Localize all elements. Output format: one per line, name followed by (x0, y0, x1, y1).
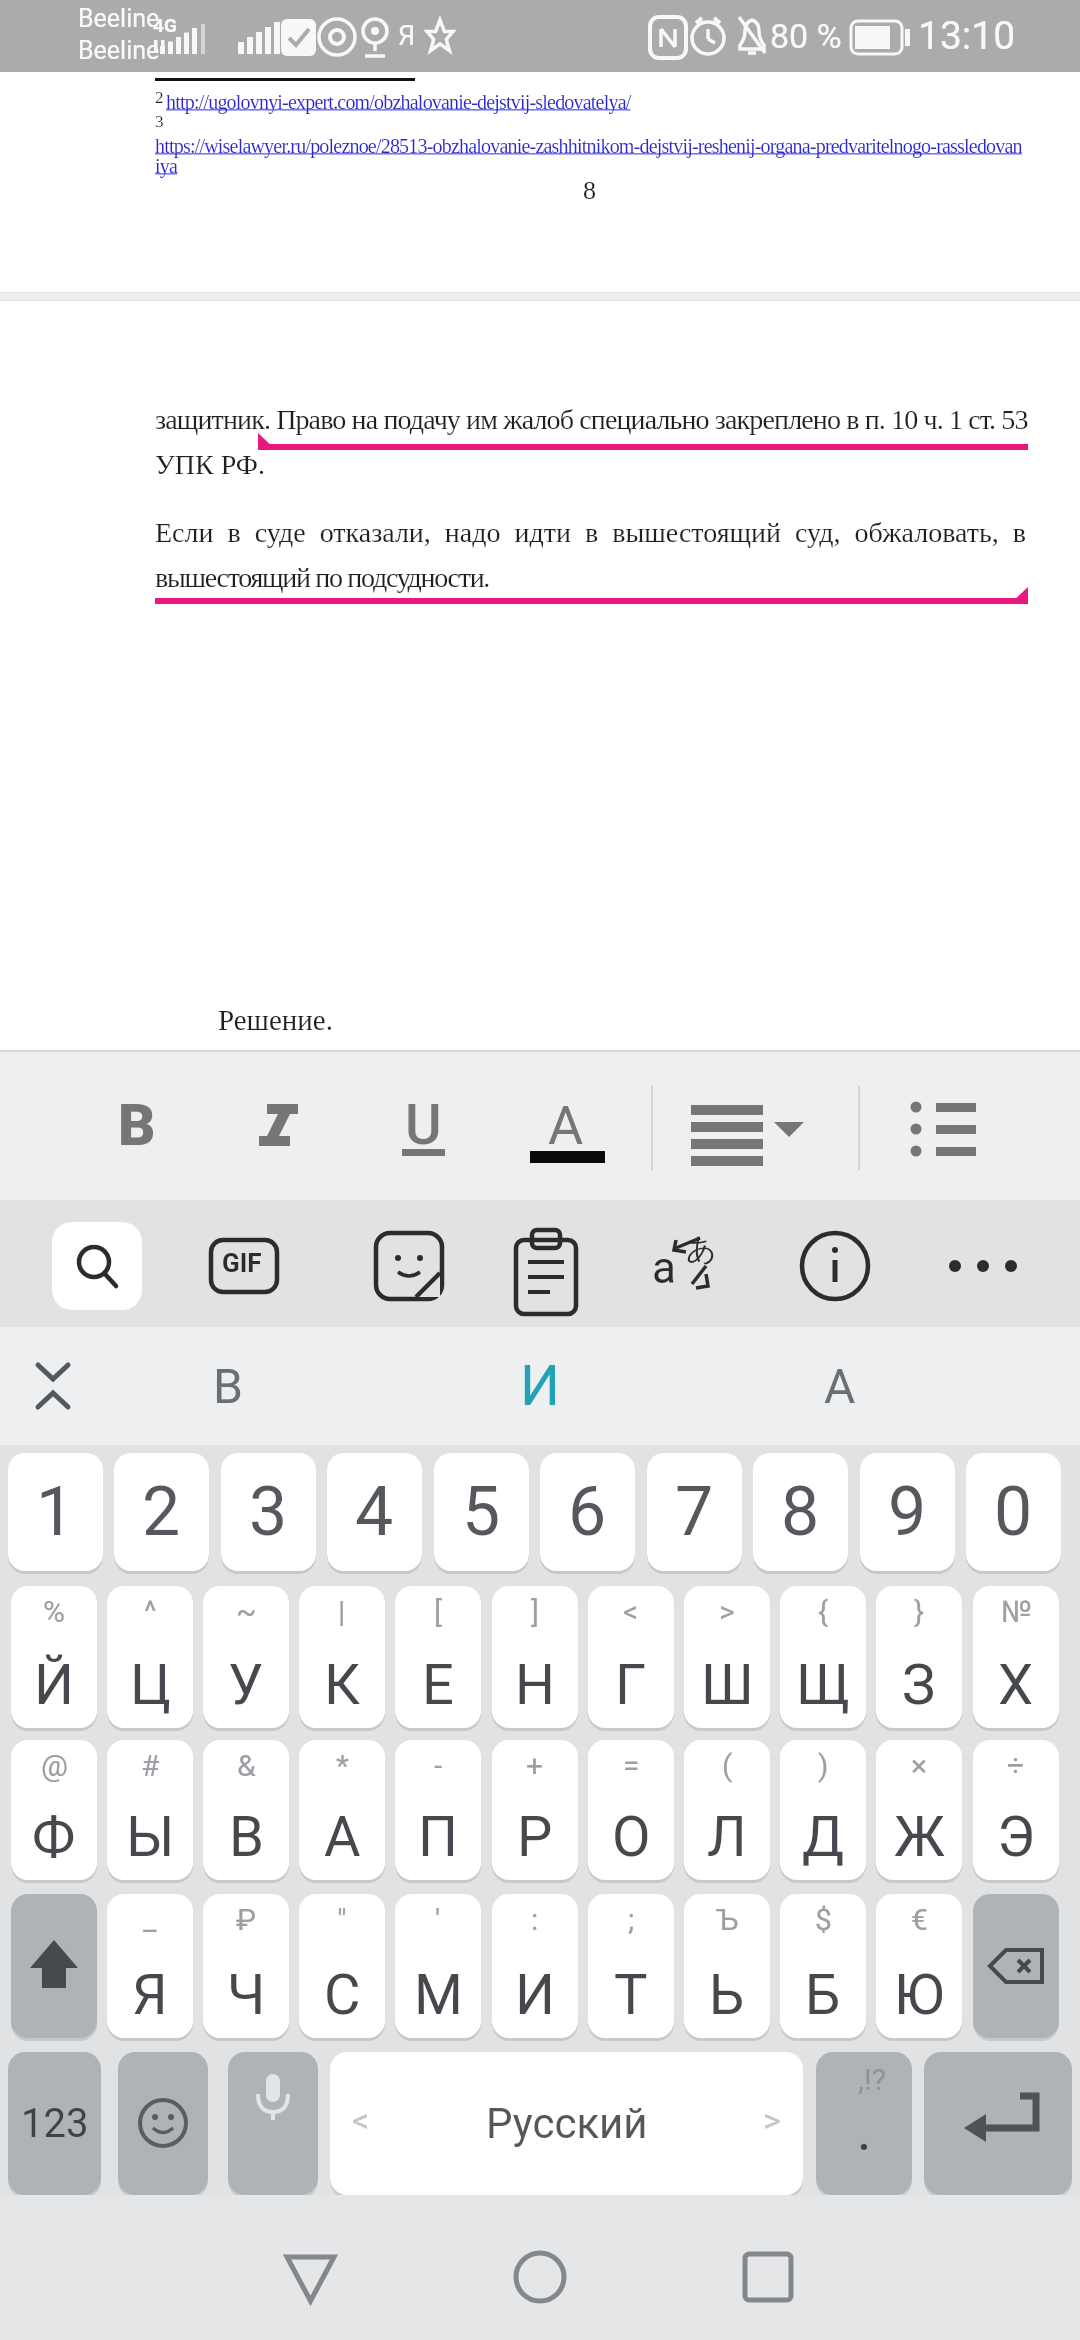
staticText: Ж (894, 1804, 945, 1870)
staticText: 0 (994, 1472, 1033, 1552)
button[interactable]: Ъ (684, 1894, 770, 2038)
staticText: € (911, 1902, 928, 1937)
button[interactable]: U (383, 1072, 463, 1178)
button[interactable]: 4 (327, 1453, 422, 1571)
button[interactable]: № (973, 1586, 1059, 1728)
button[interactable]: ' (395, 1894, 481, 2038)
staticText: УПК РФ. (155, 449, 265, 480)
button[interactable]: € (876, 1894, 962, 2038)
button[interactable] (118, 2052, 208, 2195)
button[interactable]: ; (588, 1894, 674, 2038)
button[interactable]: { (780, 1586, 866, 1728)
staticText: > (719, 1594, 735, 1629)
button[interactable]: × (876, 1740, 962, 1880)
button[interactable]: } (876, 1586, 962, 1728)
button[interactable] (890, 1072, 990, 1178)
button[interactable]: * (299, 1740, 385, 1880)
button[interactable] (500, 2225, 580, 2325)
button[interactable] (650, 1222, 740, 1310)
button[interactable]: Русский (330, 2052, 803, 2195)
button[interactable]: ] (492, 1586, 578, 1728)
button[interactable]: # (107, 1740, 193, 1880)
staticText: · (858, 2124, 871, 2171)
button[interactable] (728, 2225, 808, 2325)
staticText: Т (614, 1962, 648, 2028)
button[interactable]: 7 (647, 1453, 742, 1571)
staticText: Й (34, 1652, 74, 1718)
button[interactable]: ÷ (973, 1740, 1059, 1880)
staticText: Н (515, 1652, 555, 1718)
button[interactable] (365, 1222, 455, 1310)
staticText: あ (686, 1230, 717, 1268)
button[interactable]: @ (11, 1740, 97, 1880)
button[interactable]: = (588, 1740, 674, 1880)
staticText: < (352, 2100, 370, 2140)
button[interactable]: ( (684, 1740, 770, 1880)
button[interactable]: B (97, 1072, 177, 1178)
button[interactable]: _ (107, 1894, 193, 2038)
button[interactable]: - (395, 1740, 481, 1880)
button[interactable] (200, 1222, 290, 1310)
button[interactable] (945, 1222, 1035, 1310)
button[interactable] (790, 1222, 880, 1310)
staticText: 3 (249, 1472, 288, 1552)
button[interactable]: [ (395, 1586, 481, 1728)
button[interactable]: http://ugolovnyi-expert.com/obzhalovanie… (166, 91, 631, 113)
staticText: " (337, 1902, 347, 1937)
button[interactable]: > (684, 1586, 770, 1728)
staticText: 9 (888, 1472, 927, 1552)
button[interactable]: $ (780, 1894, 866, 2038)
staticText: Е (422, 1652, 454, 1718)
button[interactable]: 6 (540, 1453, 635, 1571)
button[interactable] (924, 2052, 1072, 2195)
staticText: Ы (126, 1804, 175, 1870)
button[interactable]: % (11, 1586, 97, 1728)
button[interactable]: ) (780, 1740, 866, 1880)
button[interactable]: 9 (860, 1453, 955, 1571)
button[interactable]: | (299, 1586, 385, 1728)
button[interactable]: В (118, 1332, 338, 1440)
button[interactable]: A (526, 1072, 606, 1178)
button[interactable]: 5 (434, 1453, 529, 1571)
button[interactable] (240, 1072, 320, 1178)
button[interactable] (52, 1222, 142, 1310)
staticText: > (763, 2100, 781, 2140)
staticText: Ш (701, 1652, 754, 1718)
staticText: Я (132, 1962, 168, 2028)
staticText: U (405, 1092, 442, 1158)
staticText: 13:10 (918, 13, 1016, 59)
button[interactable]: 1 (8, 1453, 103, 1571)
button[interactable] (510, 1222, 600, 1310)
button[interactable]: , (228, 2052, 318, 2195)
staticText: } (914, 1594, 925, 1629)
button[interactable]: ~ (203, 1586, 289, 1728)
button[interactable] (270, 2225, 350, 2325)
button[interactable]: " (299, 1894, 385, 2038)
staticText: # (141, 1748, 160, 1783)
staticText: Русский (486, 2099, 648, 2148)
button[interactable]: ₽ (203, 1894, 289, 2038)
button[interactable]: ,!? (816, 2052, 912, 2195)
button[interactable]: + (492, 1740, 578, 1880)
button[interactable]: iya (155, 155, 178, 177)
button[interactable]: И (430, 1332, 650, 1440)
button[interactable]: 2 (114, 1453, 209, 1571)
button[interactable]: 3 (221, 1453, 316, 1571)
button[interactable] (973, 1894, 1059, 2038)
button[interactable] (680, 1072, 810, 1178)
button[interactable]: А (730, 1332, 950, 1440)
button[interactable]: ^ (107, 1586, 193, 1728)
button[interactable] (10, 1337, 100, 1435)
button[interactable]: & (203, 1740, 289, 1880)
button[interactable]: 0 (966, 1453, 1061, 1571)
staticText: Если в суде отказали, надо идти в вышест… (155, 517, 1026, 548)
button[interactable]: 8 (753, 1453, 848, 1571)
button[interactable] (11, 1894, 97, 2038)
staticText: 7 (675, 1472, 714, 1552)
staticText: 4G (153, 14, 177, 36)
button[interactable]: https://wiselawyer.ru/poleznoe/28513-obz… (155, 135, 1022, 157)
button[interactable]: < (588, 1586, 674, 1728)
button[interactable]: : (492, 1894, 578, 2038)
staticText: а (652, 1242, 676, 1294)
button[interactable]: 123 (8, 2052, 101, 2195)
